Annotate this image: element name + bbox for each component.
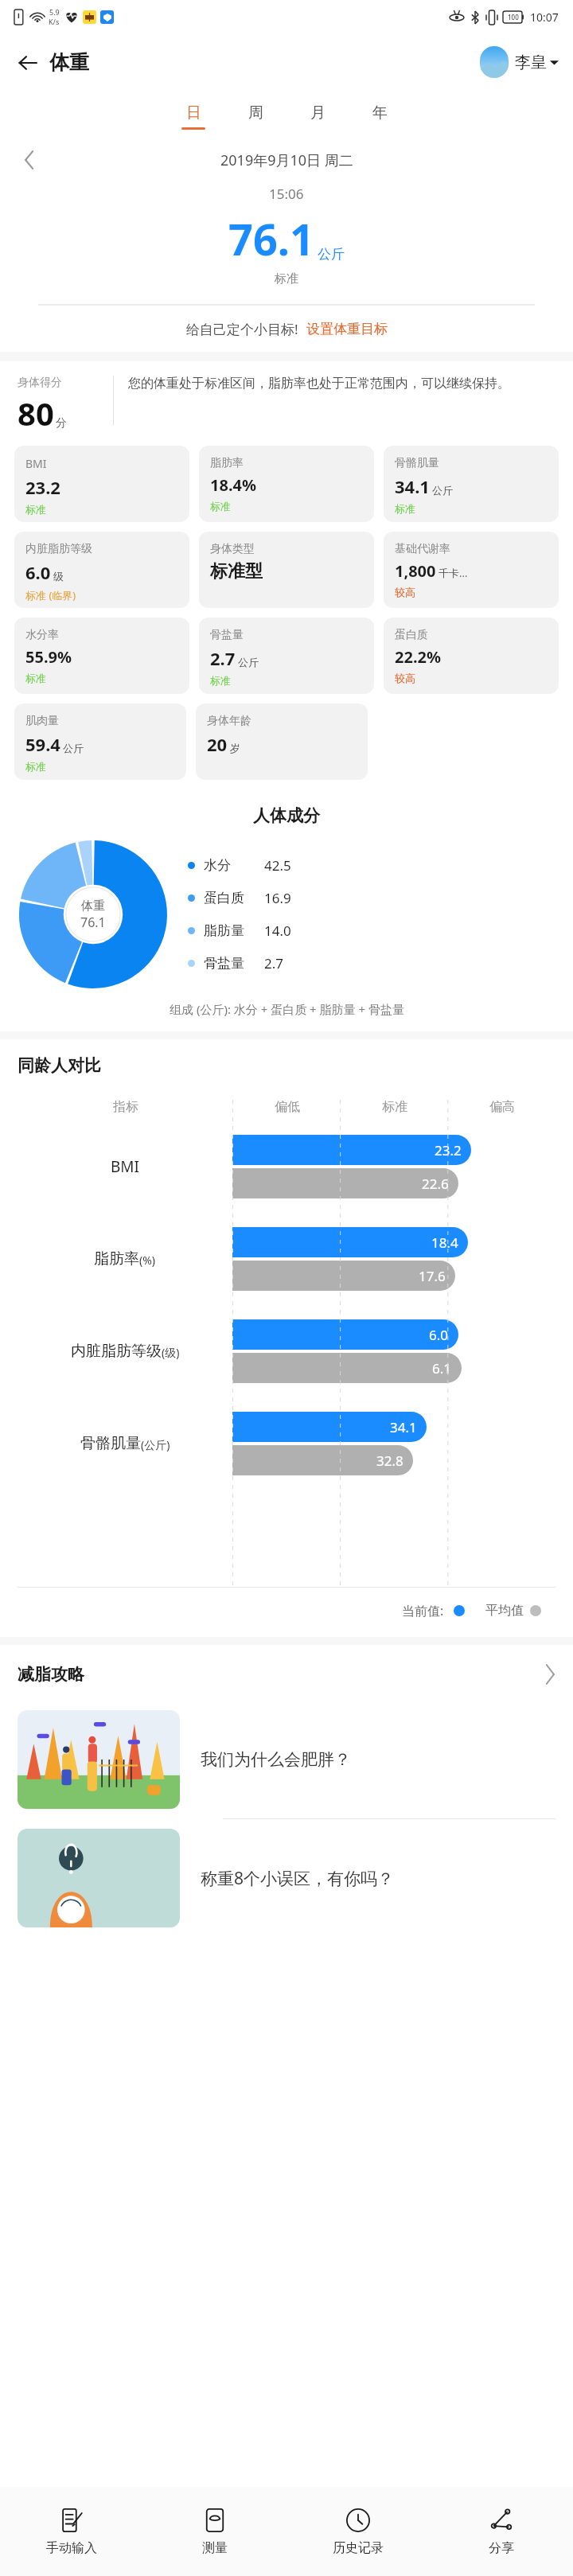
staticText: 标准型	[210, 560, 263, 583]
staticText: 脂肪率	[94, 1249, 139, 1269]
staticText: 分	[56, 416, 67, 431]
staticText: 16.9	[264, 889, 291, 907]
button[interactable]: 基础代谢率	[384, 532, 559, 608]
button[interactable]: 蛋白质	[384, 618, 559, 694]
staticText: 22.2%	[395, 646, 441, 668]
staticText: 2.7	[210, 646, 236, 670]
staticText: 肌肉量	[25, 714, 59, 728]
staticText: 称重8个小误区，有你吗？	[201, 1867, 395, 1890]
staticText: 水分	[204, 857, 264, 874]
button[interactable]: BMI	[14, 446, 189, 522]
staticText: 我们为什么会肥胖？	[201, 1749, 351, 1770]
button[interactable]: 周	[224, 103, 286, 130]
staticText: BMI	[111, 1156, 140, 1177]
button[interactable]: 历史记录	[286, 2487, 430, 2576]
staticText: 标准	[25, 503, 46, 516]
staticText: 标准	[275, 271, 298, 286]
staticText: 42.5	[264, 856, 291, 875]
staticText: 基础代谢率	[395, 542, 450, 556]
button[interactable]: 内脏脂肪等级	[14, 532, 189, 608]
button[interactable]: 身体类型	[199, 532, 374, 608]
staticText: 6.0	[25, 560, 51, 584]
button[interactable]: 月	[286, 103, 349, 130]
staticText: 34.1	[390, 1418, 417, 1436]
button[interactable]: 我们为什么会肥胖？	[0, 1701, 573, 1818]
staticText: 骨骼肌量	[395, 456, 439, 470]
staticText: 您的体重处于标准区间，脂肪率也处于正常范围内，可以继续保持。	[128, 376, 510, 392]
staticText: 6.1	[432, 1359, 452, 1378]
button[interactable]: 前一天	[18, 145, 41, 175]
staticText: 周	[248, 103, 263, 123]
staticText: 同龄人对比	[18, 1055, 101, 1076]
staticText: 岁	[230, 742, 240, 754]
staticText: 身体得分	[18, 376, 62, 390]
staticText: 内脏脂肪等级	[71, 1342, 162, 1361]
staticText: 骨骼肌量	[80, 1434, 141, 1453]
staticText: 10:07	[530, 10, 559, 25]
staticText: 59.4	[25, 732, 60, 756]
staticText: 标准	[210, 500, 231, 512]
staticText: 34.1	[395, 474, 430, 498]
staticText: 身体年龄	[207, 714, 251, 728]
staticText: 76.1	[80, 914, 106, 931]
staticText: 23.2	[435, 1141, 462, 1159]
staticText: 20	[207, 732, 228, 756]
staticText: 标准 (临界)	[25, 588, 76, 602]
button[interactable]: 骨骼肌量	[384, 446, 559, 522]
button[interactable]: 水分率	[14, 618, 189, 694]
staticText: 脂肪率	[210, 456, 244, 470]
staticText: 分享	[489, 2540, 514, 2556]
staticText: 手动输入	[46, 2540, 97, 2556]
staticText: 当前值:	[402, 1602, 444, 1619]
staticText: 标准	[25, 672, 46, 684]
staticText: 较高	[395, 586, 415, 598]
staticText: (级)	[162, 1345, 180, 1360]
staticText: 李皇	[515, 53, 547, 72]
staticText: 年	[372, 103, 388, 123]
staticText: 公斤	[63, 742, 84, 754]
staticText: 骨盐量	[204, 955, 264, 972]
staticText: 内脏脂肪等级	[25, 542, 92, 556]
staticText: 蛋白质	[204, 890, 264, 906]
button[interactable]: 脂肪率	[199, 446, 374, 522]
button[interactable]: 手动输入	[0, 2487, 143, 2576]
staticText: 公斤	[432, 484, 453, 497]
staticText: 标准	[395, 502, 415, 515]
staticText: 17.6	[419, 1267, 446, 1285]
staticText: 骨盐量	[210, 628, 244, 642]
button[interactable]: 减脂攻略	[0, 1659, 573, 1689]
staticText: 2.7	[264, 954, 284, 972]
staticText: 80	[18, 392, 54, 435]
staticText: 月	[310, 103, 325, 123]
button[interactable]: 称重8个小误区，有你吗？	[0, 1819, 573, 1937]
staticText: 体重	[81, 898, 105, 914]
button[interactable]: 分享	[430, 2487, 573, 2576]
button[interactable]: 给自己定个小目标!	[0, 306, 573, 352]
staticText: 15:06	[269, 185, 304, 203]
button[interactable]: 返回	[11, 44, 95, 81]
staticText: 18.4%	[210, 474, 256, 496]
staticText: 55.9%	[25, 646, 72, 668]
staticText: 偏高	[489, 1099, 515, 1115]
staticText: 公斤	[238, 656, 259, 668]
button[interactable]: 骨盐量	[199, 618, 374, 694]
staticText: 脂肪量	[204, 922, 264, 939]
button[interactable]: 肌肉量	[14, 703, 186, 780]
button[interactable]: 测量	[143, 2487, 286, 2576]
button[interactable]: 日	[162, 103, 224, 130]
staticText: 公斤	[318, 246, 345, 263]
staticText: 偏低	[275, 1099, 300, 1115]
staticText: 测量	[202, 2540, 228, 2556]
staticText: 标准	[210, 674, 231, 687]
staticText: 标准	[25, 760, 46, 773]
staticText: 32.8	[376, 1452, 403, 1470]
staticText: (%)	[139, 1253, 156, 1268]
staticText: 日	[186, 103, 201, 123]
staticText: 23.2	[25, 475, 60, 499]
staticText: K/s	[49, 17, 60, 26]
button[interactable]: 李皇	[480, 46, 559, 78]
button[interactable]: 身体年龄	[196, 703, 368, 780]
button[interactable]: 年	[349, 103, 411, 130]
staticText: 身体类型	[210, 542, 255, 556]
staticText: 18.4	[431, 1233, 458, 1252]
